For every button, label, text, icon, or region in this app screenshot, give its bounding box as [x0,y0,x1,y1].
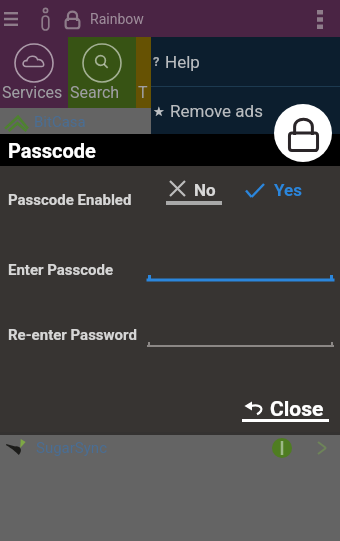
staticText: ? [153,54,160,69]
button[interactable]: Lock [60,7,84,31]
button[interactable]: Yes [243,180,309,208]
button[interactable]: Services [0,37,68,108]
staticText: No [194,180,216,200]
button[interactable]: No [166,180,224,208]
button[interactable]: Passcode lock [274,104,332,162]
staticText: ★ [153,104,165,119]
staticText: Help [165,52,200,72]
staticText: Re-enter Password [8,326,137,344]
staticText: Passcode Enabled [8,191,132,209]
button[interactable]: Information [34,8,56,30]
button[interactable]: Navigation menu [0,8,22,30]
staticText: Enter Passcode [8,261,114,279]
button[interactable]: ? [151,37,340,86]
staticText: T [138,83,148,102]
button[interactable]: Close [241,397,333,425]
staticText: Yes [274,180,302,200]
staticText: Passcode [8,139,96,162]
staticText: Search [70,83,120,102]
button[interactable]: Search [68,37,136,108]
button[interactable]: ★ [151,87,340,135]
button[interactable]: SugarSync [0,435,340,461]
button[interactable]: T [136,37,152,108]
button[interactable]: More options [306,5,334,33]
staticText: Remove ads [170,101,263,121]
button[interactable] [148,339,333,353]
button[interactable] [148,272,333,286]
staticText: Rainbow [90,11,144,27]
button[interactable]: BitCasa [0,109,340,135]
staticText: Close [270,397,324,422]
staticText: Services [2,83,63,102]
staticText: SugarSync [36,439,107,457]
staticText: BitCasa [34,113,86,131]
